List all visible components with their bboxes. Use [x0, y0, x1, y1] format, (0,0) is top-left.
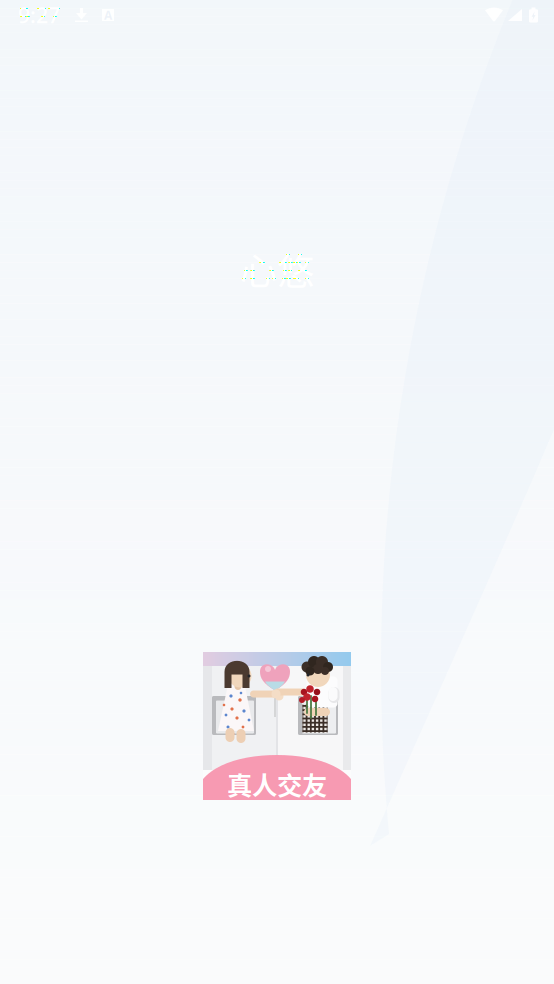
staticText: 心悠	[240, 242, 314, 296]
staticText: 真人交友	[227, 766, 327, 802]
staticText: A	[104, 7, 112, 23]
staticText: 9:27	[18, 1, 60, 29]
